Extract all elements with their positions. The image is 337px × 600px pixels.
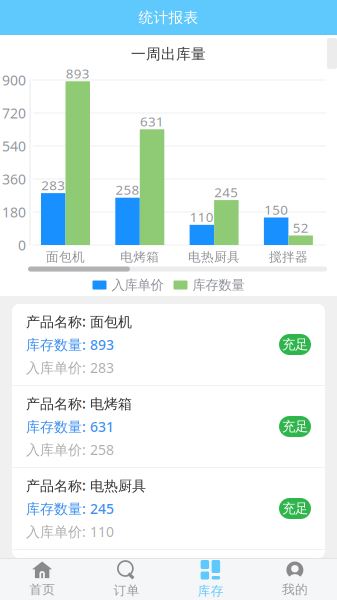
staticText: 入库单价: 283 bbox=[26, 358, 114, 377]
staticText: 258 bbox=[115, 181, 139, 199]
staticText: 0 bbox=[18, 235, 26, 255]
staticText: 150 bbox=[264, 200, 288, 219]
staticText: 首页 bbox=[29, 581, 55, 597]
staticText: 库存数量: 245 bbox=[26, 499, 114, 518]
staticText: 52 bbox=[293, 218, 309, 237]
button[interactable]: 产品名称: 电烤箱 bbox=[12, 386, 325, 467]
staticText: 充足 bbox=[282, 500, 308, 517]
button[interactable]: 订单 bbox=[84, 558, 168, 600]
staticText: 搅拌器 bbox=[269, 249, 308, 265]
staticText: 订单 bbox=[113, 582, 139, 598]
staticText: 110 bbox=[190, 208, 214, 226]
staticText: 电热厨具 bbox=[188, 249, 240, 265]
staticText: 库存数量: 631 bbox=[26, 417, 114, 436]
staticText: 充足 bbox=[282, 418, 308, 435]
staticText: 库存数量: 893 bbox=[26, 335, 114, 354]
staticText: 900 bbox=[2, 70, 26, 90]
staticText: 一周出库量 bbox=[131, 45, 206, 63]
staticText: 电烤箱 bbox=[120, 249, 159, 265]
staticText: 库存数量 bbox=[192, 277, 244, 293]
staticText: 283 bbox=[41, 176, 65, 194]
staticText: 360 bbox=[2, 169, 26, 189]
button[interactable]: 我的 bbox=[253, 558, 337, 600]
button[interactable]: 产品名称: 电热厨具 bbox=[12, 468, 325, 549]
staticText: 充足 bbox=[282, 336, 308, 353]
staticText: 245 bbox=[214, 183, 238, 201]
staticText: 产品名称: 电热厨具 bbox=[26, 476, 146, 495]
staticText: 631 bbox=[140, 112, 164, 130]
staticText: 库存 bbox=[198, 583, 224, 599]
staticText: 720 bbox=[2, 103, 26, 123]
staticText: 我的 bbox=[282, 581, 308, 597]
button[interactable]: 首页 bbox=[0, 558, 84, 600]
staticText: 入库单价: 110 bbox=[26, 522, 114, 541]
staticText: 入库单价: 258 bbox=[26, 440, 114, 459]
staticText: 产品名称: 面包机 bbox=[26, 312, 132, 331]
staticText: 统计报表 bbox=[138, 8, 198, 27]
staticText: 893 bbox=[66, 64, 90, 82]
staticText: 入库单价 bbox=[111, 277, 163, 293]
staticText: 540 bbox=[2, 136, 26, 156]
staticText: 面包机 bbox=[46, 249, 85, 265]
button[interactable]: 库存 bbox=[168, 558, 253, 600]
staticText: 产品名称: 电烤箱 bbox=[26, 394, 132, 413]
staticText: 180 bbox=[2, 202, 26, 222]
button[interactable]: 产品名称: 面包机 bbox=[12, 304, 325, 385]
